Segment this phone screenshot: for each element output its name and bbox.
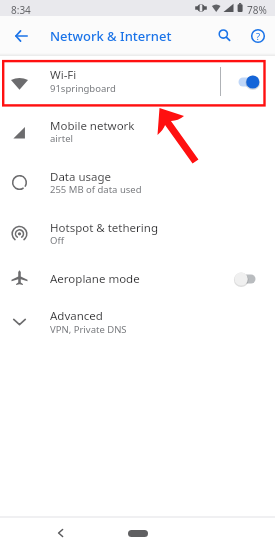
- staticText: Wi-Fi: [50, 67, 77, 83]
- button[interactable]: Search: [211, 22, 239, 50]
- button[interactable]: Switch off: [234, 271, 260, 287]
- button[interactable]: Back: [7, 22, 35, 50]
- staticText: airtel: [50, 132, 73, 145]
- button[interactable]: Back: [48, 521, 72, 545]
- button[interactable]: [0, 298, 275, 346]
- staticText: ?: [256, 30, 261, 43]
- staticText: 8:34: [11, 3, 31, 17]
- staticText: Network & Internet: [50, 27, 172, 45]
- staticText: 91springboard: [50, 82, 116, 95]
- button[interactable]: Help: [244, 22, 272, 50]
- staticText: Data usage: [50, 169, 112, 185]
- staticText: 78%: [247, 3, 267, 17]
- button[interactable]: Home: [128, 530, 148, 537]
- button[interactable]: Switch on: [234, 74, 260, 90]
- staticText: Off: [50, 234, 64, 247]
- staticText: 255 MB of data used: [50, 183, 142, 196]
- button[interactable]: [0, 254, 275, 302]
- staticText: Mobile network: [50, 118, 135, 134]
- staticText: Advanced: [50, 308, 103, 324]
- staticText: VPN, Private DNS: [50, 323, 127, 336]
- staticText: Aeroplane mode: [50, 271, 140, 287]
- button[interactable]: [0, 109, 275, 157]
- button[interactable]: [0, 210, 275, 258]
- button[interactable]: [0, 59, 275, 107]
- button[interactable]: [0, 159, 275, 207]
- staticText: Hotspot & tethering: [50, 220, 158, 236]
